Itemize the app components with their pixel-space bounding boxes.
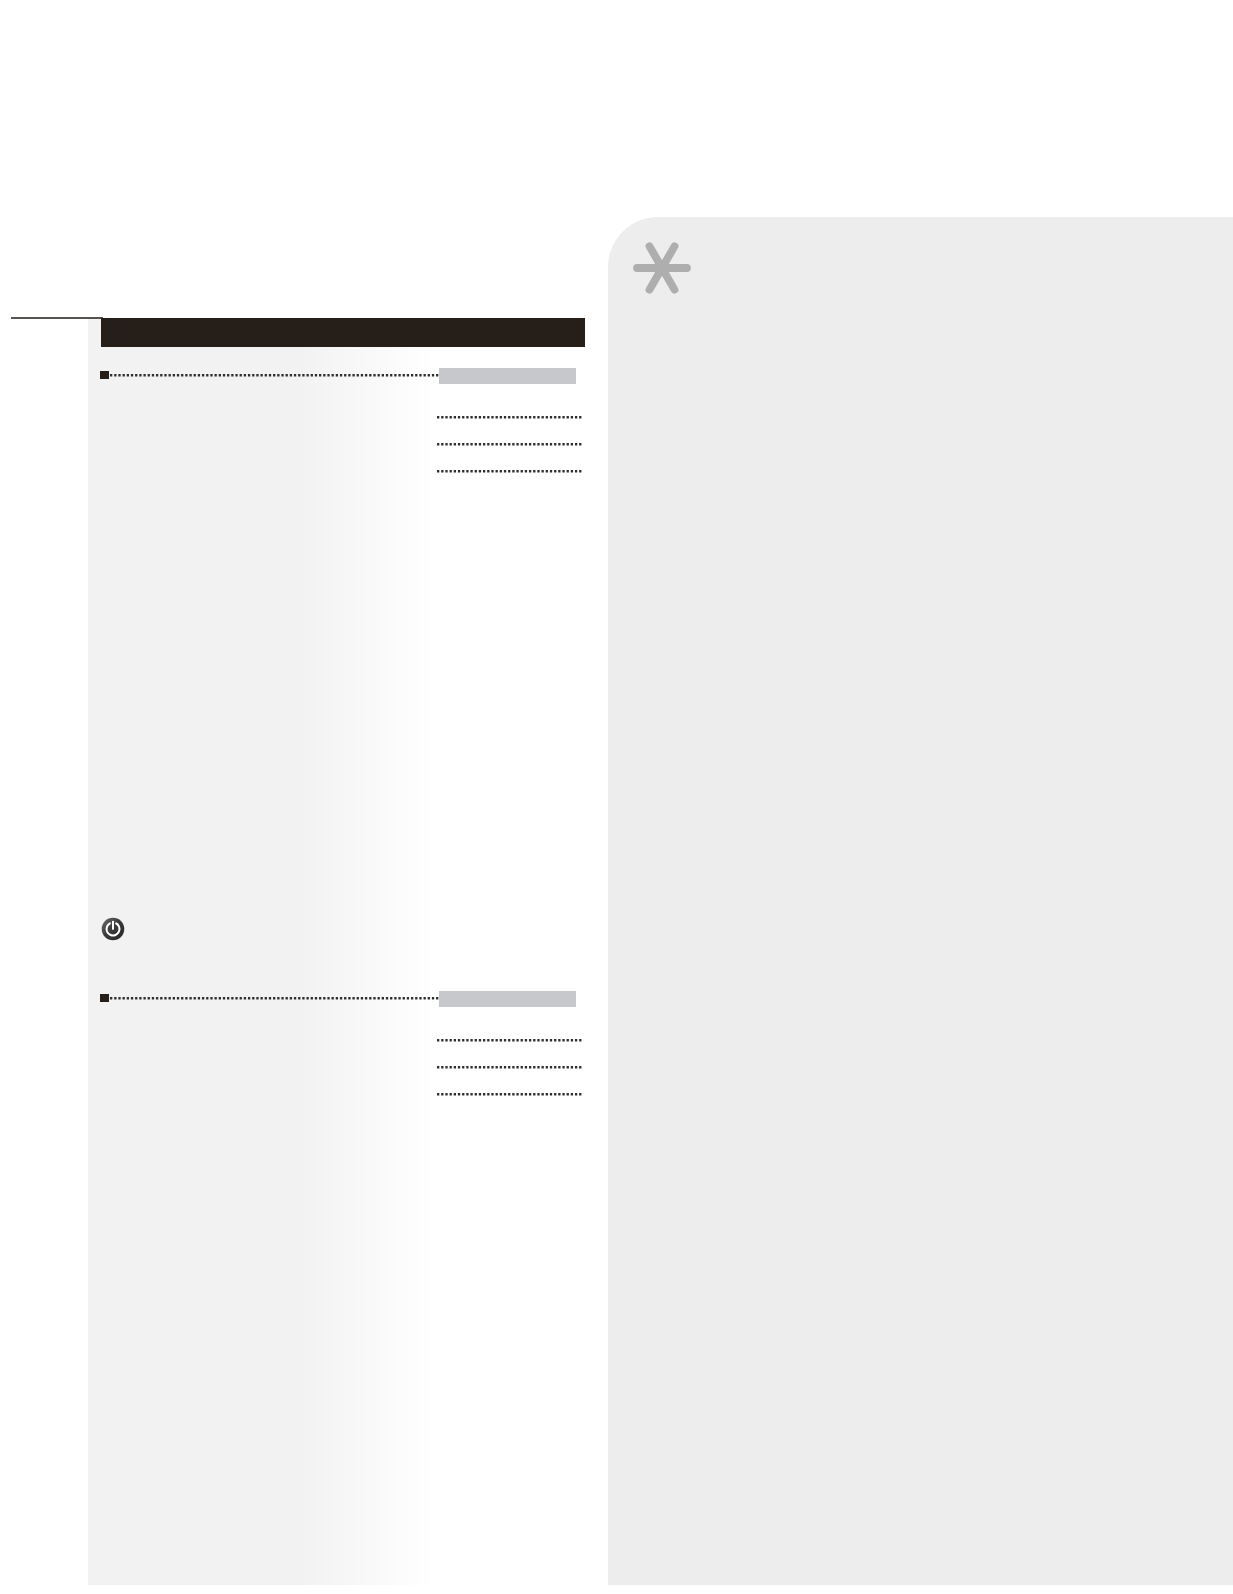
button[interactable]: Power: [101, 917, 125, 941]
button[interactable]: [100, 987, 582, 1127]
button[interactable]: [100, 364, 582, 504]
button[interactable]: Snowflake: [633, 239, 691, 297]
